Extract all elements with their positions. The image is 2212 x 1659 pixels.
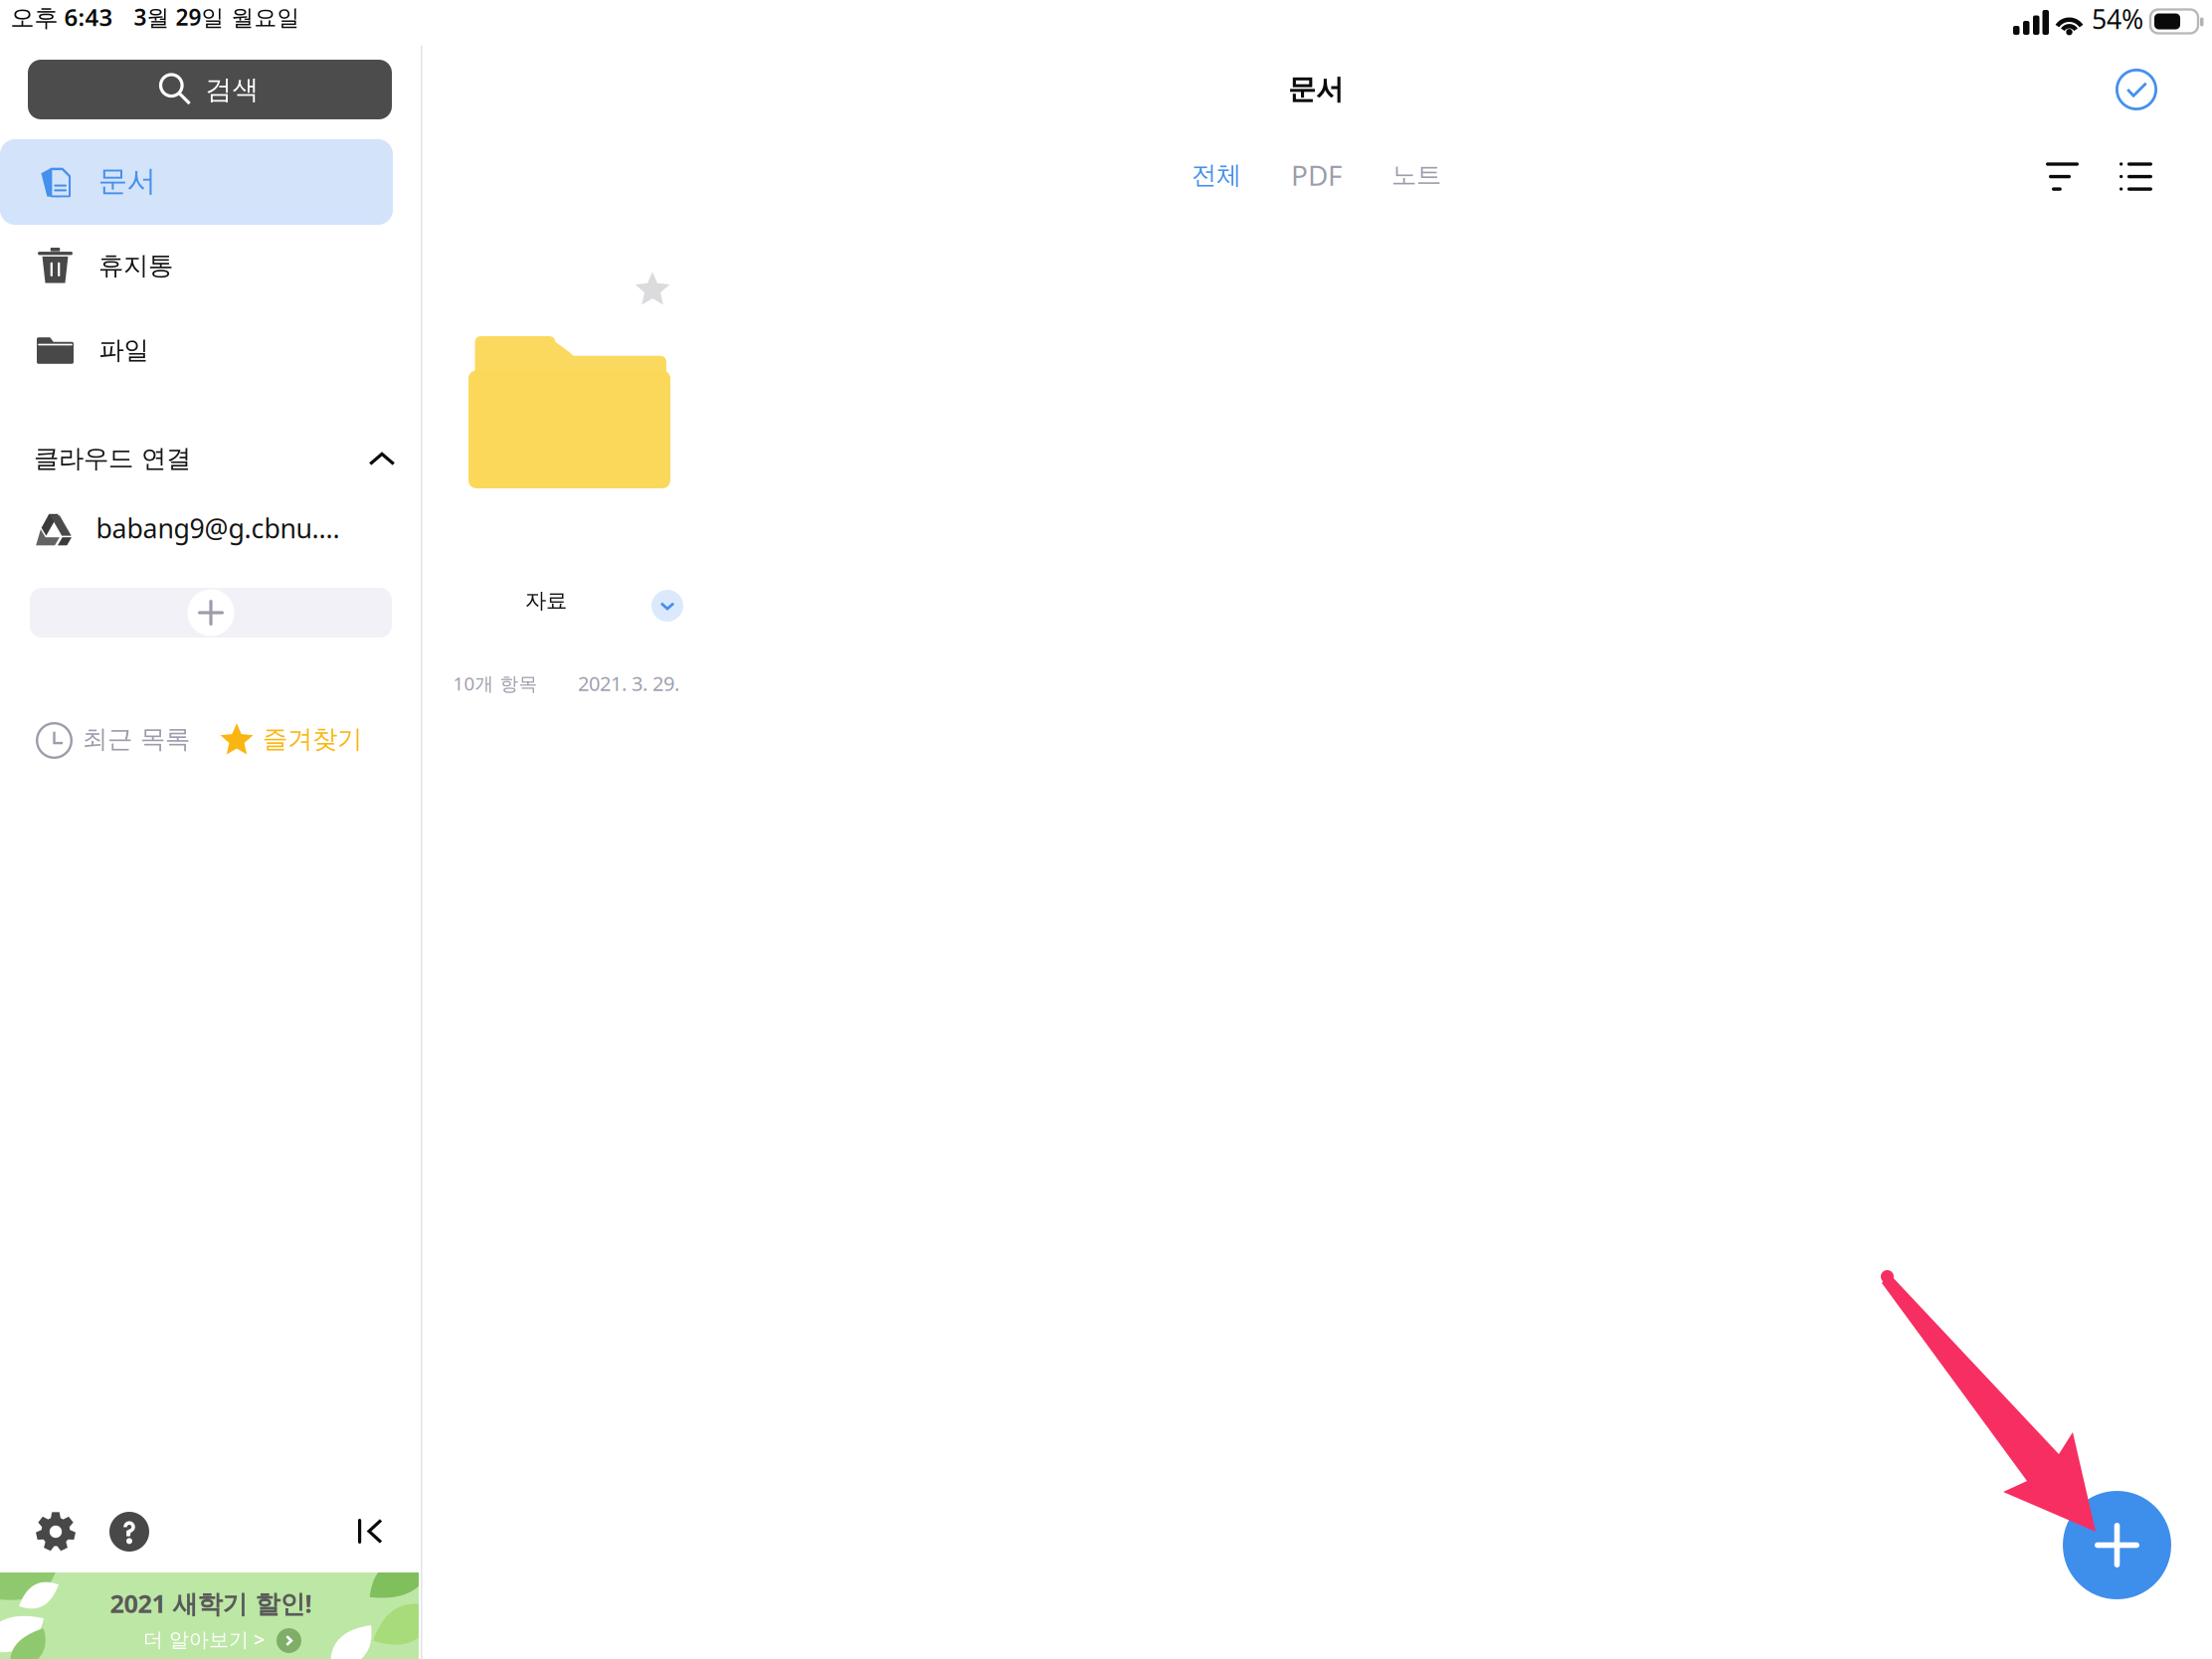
button[interactable]: PDF: [1279, 154, 1355, 196]
staticText: 자료: [525, 588, 567, 614]
staticText: 클라우드 연결: [34, 443, 191, 474]
button[interactable]: 휴지통: [0, 224, 393, 309]
staticText: 문서: [98, 163, 156, 199]
staticText: 3월 29일 월요일: [134, 2, 300, 32]
button[interactable]: 최근 목록: [32, 716, 199, 764]
staticText: PDF: [1291, 157, 1343, 194]
button[interactable]: 문서: [0, 139, 393, 225]
staticText: 최근 목록: [83, 723, 190, 754]
button[interactable]: 검색: [28, 60, 392, 119]
button[interactable]: 설정: [36, 1512, 76, 1552]
staticText: 더 알아보기 >: [143, 1626, 265, 1652]
button[interactable]: 메뉴: [651, 590, 683, 622]
button[interactable]: 즐겨찾기 표시: [635, 271, 670, 306]
button[interactable]: babang9@g.cbnu....: [30, 503, 396, 555]
staticText: 파일: [99, 335, 149, 366]
button[interactable]: 2021 새학기 할인!: [0, 1572, 419, 1659]
staticText: 전체: [1192, 160, 1241, 190]
button[interactable]: 새로 만들기: [2063, 1491, 2171, 1599]
staticText: 오후 6:43: [10, 1, 113, 33]
button[interactable]: 클라우드 계정 추가: [30, 588, 392, 638]
staticText: babang9@g.cbnu....: [96, 511, 340, 546]
button[interactable]: 클라우드 연결: [30, 434, 396, 483]
button[interactable]: 선택: [2116, 69, 2157, 110]
staticText: 휴지통: [98, 250, 173, 281]
staticText: 노트: [1391, 160, 1441, 190]
button[interactable]: 정렬: [2046, 162, 2079, 189]
button[interactable]: 보기 전환: [2120, 162, 2152, 189]
staticText: 검색: [205, 73, 259, 106]
button[interactable]: 노트: [1379, 154, 1454, 196]
button[interactable]: 즐겨찾기: [213, 716, 382, 764]
button[interactable]: 도움말: [109, 1512, 149, 1552]
button[interactable]: 전체: [1180, 154, 1253, 196]
staticText: 2021. 3. 29.: [578, 670, 679, 697]
staticText: 즐겨찾기: [263, 723, 362, 754]
button[interactable]: 파일: [0, 308, 393, 394]
button[interactable]: 자료 폴더: [468, 336, 670, 488]
staticText: 문서: [1288, 72, 1344, 107]
staticText: 54%: [2092, 1, 2143, 37]
staticText: 2021 새학기 할인!: [110, 1587, 312, 1620]
staticText: 10개 항목: [453, 671, 538, 696]
button[interactable]: 사이드바 접기: [358, 1519, 383, 1544]
